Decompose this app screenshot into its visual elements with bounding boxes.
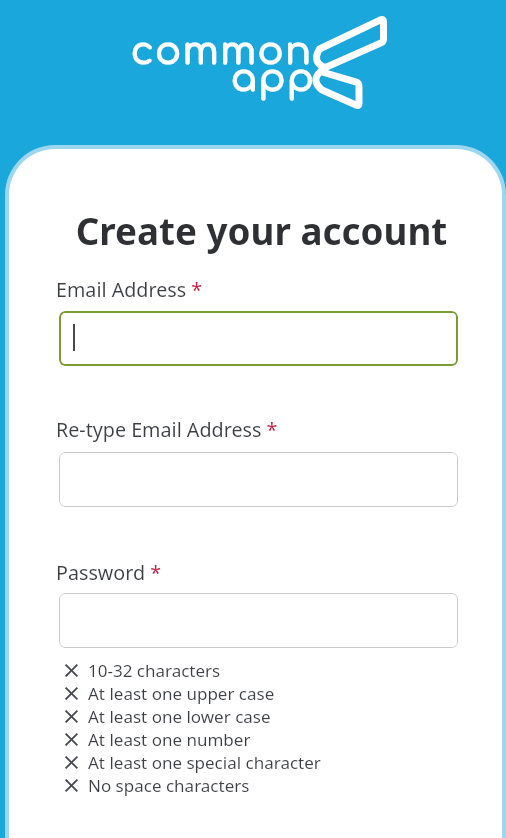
staticText: At least one lower case bbox=[88, 705, 271, 728]
staticText: At least one upper case bbox=[88, 682, 275, 705]
staticText: common bbox=[131, 31, 313, 73]
staticText: app bbox=[231, 58, 316, 100]
button[interactable] bbox=[59, 593, 458, 648]
button[interactable] bbox=[59, 452, 458, 507]
staticText: At least one number bbox=[88, 728, 251, 751]
staticText: Password * bbox=[56, 559, 162, 586]
staticText: At least one special character bbox=[88, 751, 321, 774]
other: Common App logo bbox=[300, 8, 400, 120]
staticText: Re-type Email Address * bbox=[56, 416, 278, 443]
button[interactable] bbox=[59, 311, 458, 366]
staticText: Email Address * bbox=[56, 276, 203, 303]
staticText: Create your account bbox=[15, 206, 502, 256]
staticText: No space characters bbox=[88, 774, 250, 797]
staticText: 10-32 characters bbox=[88, 659, 221, 682]
